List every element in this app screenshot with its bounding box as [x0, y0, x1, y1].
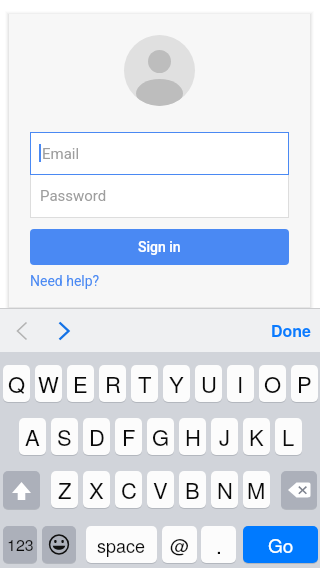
button[interactable]: Sign in [30, 229, 289, 265]
button[interactable]: O [259, 365, 286, 402]
staticText: O [264, 368, 282, 400]
staticText: X [89, 474, 104, 506]
staticText: Go [268, 531, 294, 558]
button[interactable]: V [147, 471, 174, 508]
staticText: A [25, 421, 40, 453]
staticText: T [138, 368, 152, 400]
button[interactable]: M [243, 471, 270, 508]
staticText: L [282, 421, 295, 453]
button[interactable]: H [179, 418, 206, 455]
button[interactable]: C [115, 471, 142, 508]
button[interactable]: Done [267, 314, 316, 347]
staticText: Email [42, 145, 80, 163]
staticText: S [57, 421, 72, 453]
button[interactable]: D [83, 418, 110, 455]
button[interactable]: L [275, 418, 302, 455]
staticText: @ [170, 531, 190, 558]
button[interactable]: Shift [3, 471, 40, 509]
button[interactable]: Y [163, 365, 190, 402]
staticText: Done [271, 319, 312, 342]
button[interactable]: Emoji keyboard [42, 526, 76, 563]
staticText: Need help? [30, 273, 100, 289]
staticText: E [73, 368, 88, 400]
button[interactable]: K [243, 418, 270, 455]
staticText: D [89, 421, 105, 453]
button[interactable]: space [86, 526, 157, 563]
button[interactable]: J [211, 418, 238, 455]
button[interactable]: T [131, 365, 158, 402]
button[interactable]: Previous field [8, 317, 36, 345]
staticText: Password [40, 187, 107, 205]
button[interactable]: @ [162, 526, 197, 563]
button[interactable]: P [291, 365, 318, 402]
button[interactable]: Go [243, 526, 318, 563]
button[interactable]: N [211, 471, 238, 508]
button[interactable]: G [147, 418, 174, 455]
staticText: J [219, 421, 231, 453]
staticText: 123 [7, 533, 34, 556]
button[interactable]: Email [30, 132, 289, 175]
button[interactable]: 123 [3, 526, 37, 563]
staticText: H [185, 421, 201, 453]
button[interactable]: S [51, 418, 78, 455]
staticText: B [185, 474, 200, 506]
button[interactable]: Next field [50, 317, 78, 345]
button[interactable]: Z [51, 471, 78, 508]
button[interactable]: U [195, 365, 222, 402]
button[interactable]: W [35, 365, 62, 402]
button[interactable]: R [99, 365, 126, 402]
staticText: I [237, 368, 244, 400]
button[interactable]: Q [3, 365, 30, 402]
staticText: Q [8, 368, 26, 400]
button[interactable]: E [67, 365, 94, 402]
staticText: Z [58, 474, 72, 506]
staticText: V [153, 474, 168, 506]
button[interactable]: I [227, 365, 254, 402]
button[interactable]: F [115, 418, 142, 455]
staticText: K [249, 421, 264, 453]
staticText: F [122, 421, 136, 453]
button[interactable]: B [179, 471, 206, 508]
staticText: G [152, 421, 170, 453]
staticText: N [217, 474, 233, 506]
staticText: W [38, 368, 59, 400]
staticText: Sign in [138, 239, 181, 255]
button[interactable]: Need help? [26, 269, 104, 293]
staticText: Y [169, 368, 184, 400]
staticText: space [97, 532, 146, 558]
button[interactable]: . [201, 526, 236, 563]
staticText: P [297, 368, 312, 400]
staticText: M [247, 474, 266, 506]
staticText: U [201, 368, 217, 400]
staticText: . [216, 530, 222, 560]
staticText: R [105, 368, 121, 400]
button[interactable]: A [19, 418, 46, 455]
button[interactable]: Backspace [281, 471, 317, 509]
button[interactable]: Password [30, 174, 289, 218]
staticText: C [121, 474, 137, 506]
button[interactable]: X [83, 471, 110, 508]
